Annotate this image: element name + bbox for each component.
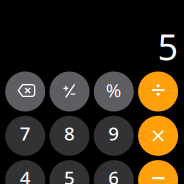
button[interactable]: Percent [94,71,134,111]
staticText: 4 [20,165,31,184]
staticText: 8 [64,121,75,146]
button[interactable]: 9 [94,116,134,156]
button[interactable]: Multiply [138,116,178,156]
button[interactable]: Minus [138,160,178,184]
button[interactable]: 4 [5,160,45,184]
staticText: 5 [64,165,75,184]
button[interactable]: 5 [49,160,89,184]
staticText: 7 [20,121,31,146]
staticText: 9 [108,121,119,146]
button[interactable]: Divide [138,71,178,111]
button[interactable]: 8 [49,116,89,156]
button[interactable]: Plus or minus [49,71,89,111]
button[interactable]: 7 [5,116,45,156]
staticText: 6 [108,165,119,184]
button[interactable]: Delete [5,71,45,111]
staticText: % [106,78,122,102]
button[interactable]: 6 [94,160,134,184]
staticText: 5 [157,23,178,70]
